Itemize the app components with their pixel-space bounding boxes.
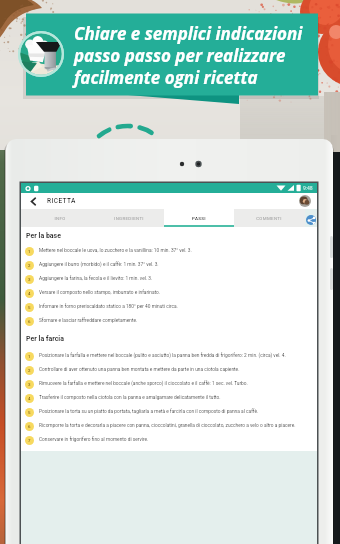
button[interactable]: 4 xyxy=(25,391,317,405)
staticText: 3 xyxy=(28,277,31,282)
staticText: Ricomporre la torta e decorarla a piacer… xyxy=(39,423,296,429)
staticText: 4 xyxy=(28,291,31,296)
staticText: Infornare in forno preriscaldato statico… xyxy=(39,304,178,310)
button[interactable]: Share xyxy=(306,215,316,225)
staticText: INGREDIENTI xyxy=(114,216,144,221)
button[interactable]: 6 xyxy=(25,314,317,328)
staticText: Trasferire il composto nella ciotola con… xyxy=(39,395,221,401)
staticText: 6 xyxy=(28,424,31,429)
button[interactable]: 1 xyxy=(25,244,317,258)
button[interactable]: 3 xyxy=(25,377,317,391)
staticText: Mettere nel boccale le uova, lo zucchero… xyxy=(39,248,192,254)
staticText: Chiare e semplici indicazioni passo pass… xyxy=(74,22,303,89)
staticText: 1 xyxy=(28,354,31,359)
staticText: RICETTA xyxy=(47,197,76,205)
staticText: Aggiungere la farina, la fecola e il lie… xyxy=(39,276,153,282)
staticText: Aggiungere il burro (morbido) e il caffè… xyxy=(39,262,159,268)
staticText: PASSI xyxy=(192,216,206,221)
staticText: 5 xyxy=(28,305,31,310)
staticText: Versare il composto nello stampo, imburr… xyxy=(39,290,161,296)
staticText: Per la base xyxy=(26,232,61,240)
button[interactable]: 3 xyxy=(25,272,317,286)
staticText: 2 xyxy=(28,368,31,373)
button[interactable]: Profile xyxy=(299,195,311,207)
staticText: INFO xyxy=(54,216,66,221)
button[interactable]: Back xyxy=(27,195,40,208)
button[interactable]: 4 xyxy=(25,286,317,300)
staticText: Conservare in frigorifero fino al moment… xyxy=(39,437,149,443)
button[interactable]: INGREDIENTI xyxy=(94,209,164,227)
staticText: 7 xyxy=(28,438,31,443)
staticText: 9:48 xyxy=(303,185,313,191)
button[interactable]: 5 xyxy=(25,405,317,419)
staticText: Sfornare e lasciar raffreddare completam… xyxy=(39,318,138,324)
staticText: Rimuovere la farfalla e mettere nel bocc… xyxy=(39,381,248,387)
staticText: Posizionare la torta su un piatto da por… xyxy=(39,409,259,415)
staticText: 1 xyxy=(28,249,31,254)
staticText: Posizionare la farfalla e mettere nel bo… xyxy=(39,353,286,359)
staticText: Per la farcia xyxy=(26,335,64,343)
staticText: 3 xyxy=(28,382,31,387)
button[interactable]: 1 xyxy=(25,349,317,363)
button[interactable]: 2 xyxy=(25,258,317,272)
staticText: 2 xyxy=(28,263,31,268)
button[interactable]: PASSI xyxy=(164,209,234,227)
button[interactable]: 5 xyxy=(25,300,317,314)
button[interactable]: INFO xyxy=(25,209,94,227)
button[interactable]: 6 xyxy=(25,419,317,433)
staticText: 6 xyxy=(28,319,31,324)
staticText: 4 xyxy=(28,396,31,401)
button[interactable]: 2 xyxy=(25,363,317,377)
button[interactable]: COMMENTI xyxy=(234,209,304,227)
button[interactable]: 7 xyxy=(25,433,317,447)
staticText: COMMENTI xyxy=(256,216,282,221)
staticText: 5 xyxy=(28,410,31,415)
staticText: Controllare di aver ottenuto una panna b… xyxy=(39,367,240,373)
